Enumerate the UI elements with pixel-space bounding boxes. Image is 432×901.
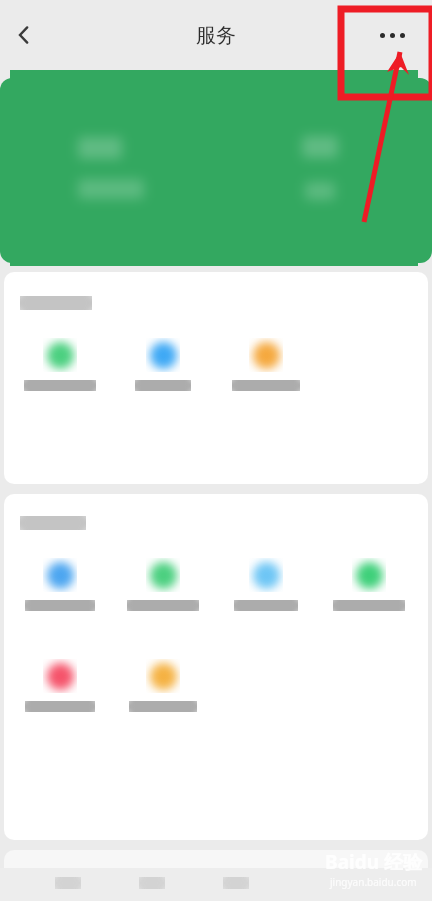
button[interactable] [111,336,214,393]
button[interactable] [111,657,214,714]
button[interactable]: Tab 2 [130,868,174,898]
button[interactable]: Back [2,13,46,57]
button[interactable] [0,78,432,263]
button[interactable] [214,556,317,613]
staticText: Baidu 经验 [325,849,422,875]
button[interactable] [8,336,111,393]
button[interactable] [8,657,111,714]
staticText: 服务 [196,23,236,48]
button[interactable] [317,556,420,613]
button[interactable]: Tab 1 [46,868,90,898]
button[interactable] [111,556,214,613]
button[interactable] [8,556,111,613]
button[interactable]: More options [368,13,416,57]
button[interactable] [214,336,317,393]
staticText: jingyan.baidu.com [330,875,417,889]
button[interactable]: Tab 3 [214,868,258,898]
